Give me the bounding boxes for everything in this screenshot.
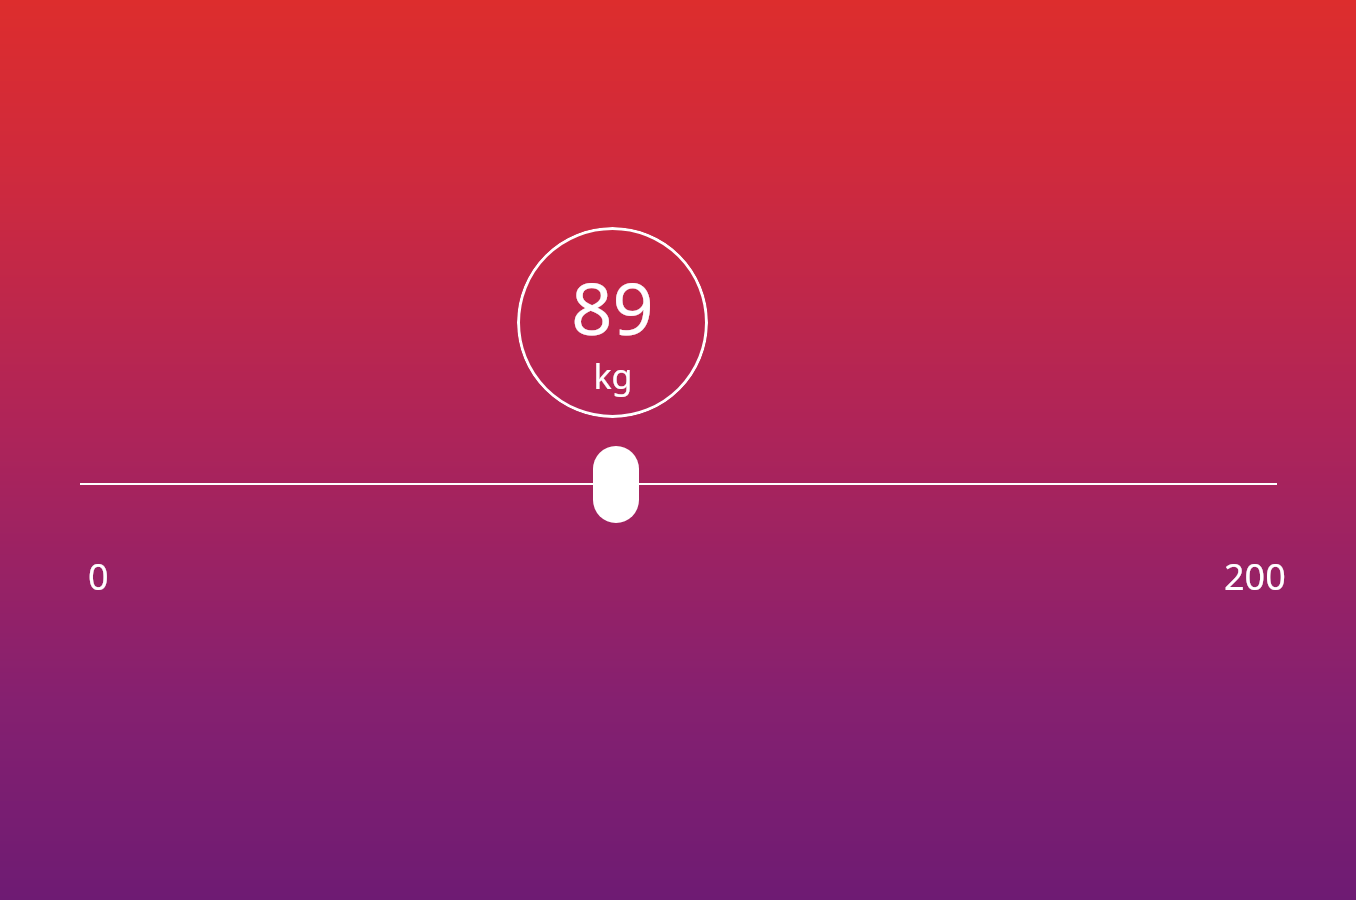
staticText: 0 [88, 552, 109, 600]
button[interactable]: 200 [1180, 552, 1286, 600]
button[interactable]: 0 [88, 552, 154, 600]
button[interactable]: Weight slider handle, 89 kilograms [593, 446, 639, 523]
staticText: kg [593, 353, 633, 399]
button[interactable]: Current weight 89 kilograms [517, 227, 708, 418]
staticText: 89 [571, 258, 654, 356]
staticText: 200 [1224, 552, 1286, 600]
